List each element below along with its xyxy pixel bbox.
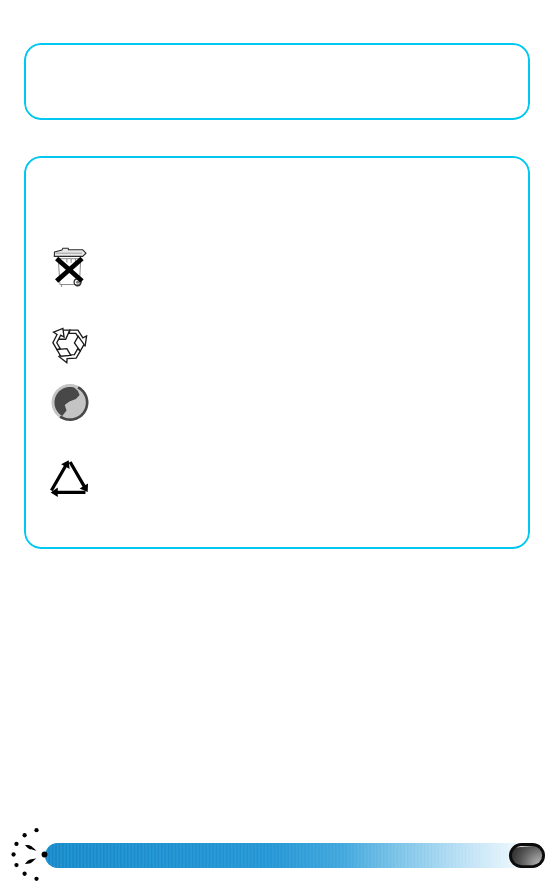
button[interactable]: Slider handle — [509, 843, 545, 868]
button[interactable]: Do not dispose in household waste — [47, 242, 91, 290]
button[interactable] — [24, 43, 530, 120]
button[interactable] — [45, 843, 540, 868]
button[interactable]: Recyclable — [47, 320, 91, 364]
button[interactable]: Green Dot — [48, 380, 92, 424]
button[interactable]: Recycling — [46, 456, 92, 500]
